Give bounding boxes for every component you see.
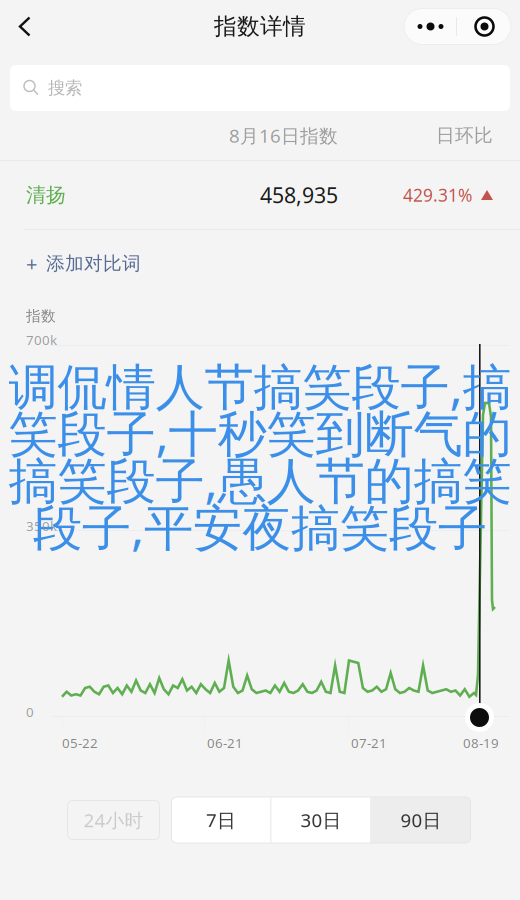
staticText: 添加对比词 <box>46 252 141 275</box>
staticText: 90日 <box>400 808 441 832</box>
staticText: 7日 <box>206 808 236 832</box>
staticText: 458,935 <box>260 181 338 209</box>
button[interactable]: + <box>0 230 520 297</box>
staticText: 24小时 <box>83 808 143 832</box>
button[interactable]: 7日 <box>171 797 270 843</box>
button[interactable]: 30日 <box>271 797 370 843</box>
button[interactable]: 90日 <box>371 797 470 843</box>
staticText: 350k <box>26 517 57 535</box>
staticText: 0 <box>26 703 34 721</box>
staticText: 清扬 <box>26 183 66 207</box>
staticText: 05-22 <box>62 734 98 752</box>
staticText: 段子,平安夜搞笑段子 <box>33 494 487 559</box>
staticText: 日环比 <box>436 124 493 147</box>
button[interactable]: Back <box>0 8 45 45</box>
staticText: 06-21 <box>207 734 243 752</box>
staticText: 笑段子,十秒笑到断气的 <box>8 400 511 465</box>
button[interactable]: 搜索 <box>10 65 510 111</box>
staticText: 08-19 <box>463 734 499 752</box>
staticText: 429.31% <box>403 183 472 206</box>
staticText: 指数 <box>26 307 56 325</box>
staticText: 搞笑段子,愚人节的搞笑 <box>8 447 511 512</box>
staticText: 8月16日指数 <box>229 123 338 148</box>
button[interactable]: 清扬 <box>0 161 520 229</box>
staticText: 调侃情人节搞笑段子,搞 <box>8 353 511 418</box>
button[interactable]: More options <box>404 8 511 44</box>
staticText: 07-21 <box>351 734 387 752</box>
staticText: 搜索 <box>48 77 82 99</box>
staticText: 700k <box>26 331 57 349</box>
staticText: 指数详情 <box>214 13 306 40</box>
staticText: 30日 <box>300 808 341 832</box>
staticText: + <box>26 250 37 277</box>
button[interactable]: 24小时 <box>67 800 159 839</box>
